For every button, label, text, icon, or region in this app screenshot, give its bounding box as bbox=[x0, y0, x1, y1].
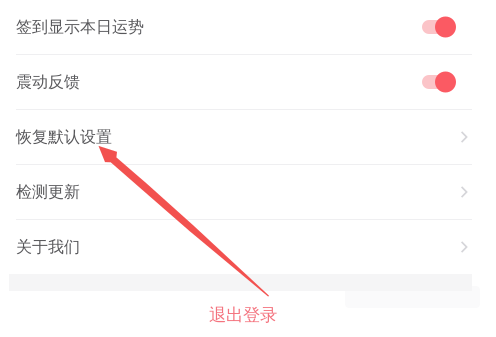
button[interactable]: 检测更新 bbox=[9, 165, 472, 219]
staticText: 检测更新 bbox=[16, 182, 80, 202]
button[interactable]: 签到显示本日运势 bbox=[9, 0, 472, 54]
button[interactable]: 恢复默认设置 bbox=[9, 110, 472, 164]
staticText: 恢复默认设置 bbox=[16, 127, 112, 147]
button[interactable]: 退出登录 bbox=[11, 299, 474, 331]
staticText: 关于我们 bbox=[16, 237, 80, 257]
button[interactable]: 震动反馈 bbox=[9, 55, 472, 109]
staticText: 签到显示本日运势 bbox=[16, 17, 144, 37]
staticText: 退出登录 bbox=[209, 304, 277, 326]
button[interactable]: 关于我们 bbox=[9, 220, 472, 274]
staticText: 震动反馈 bbox=[16, 72, 80, 92]
